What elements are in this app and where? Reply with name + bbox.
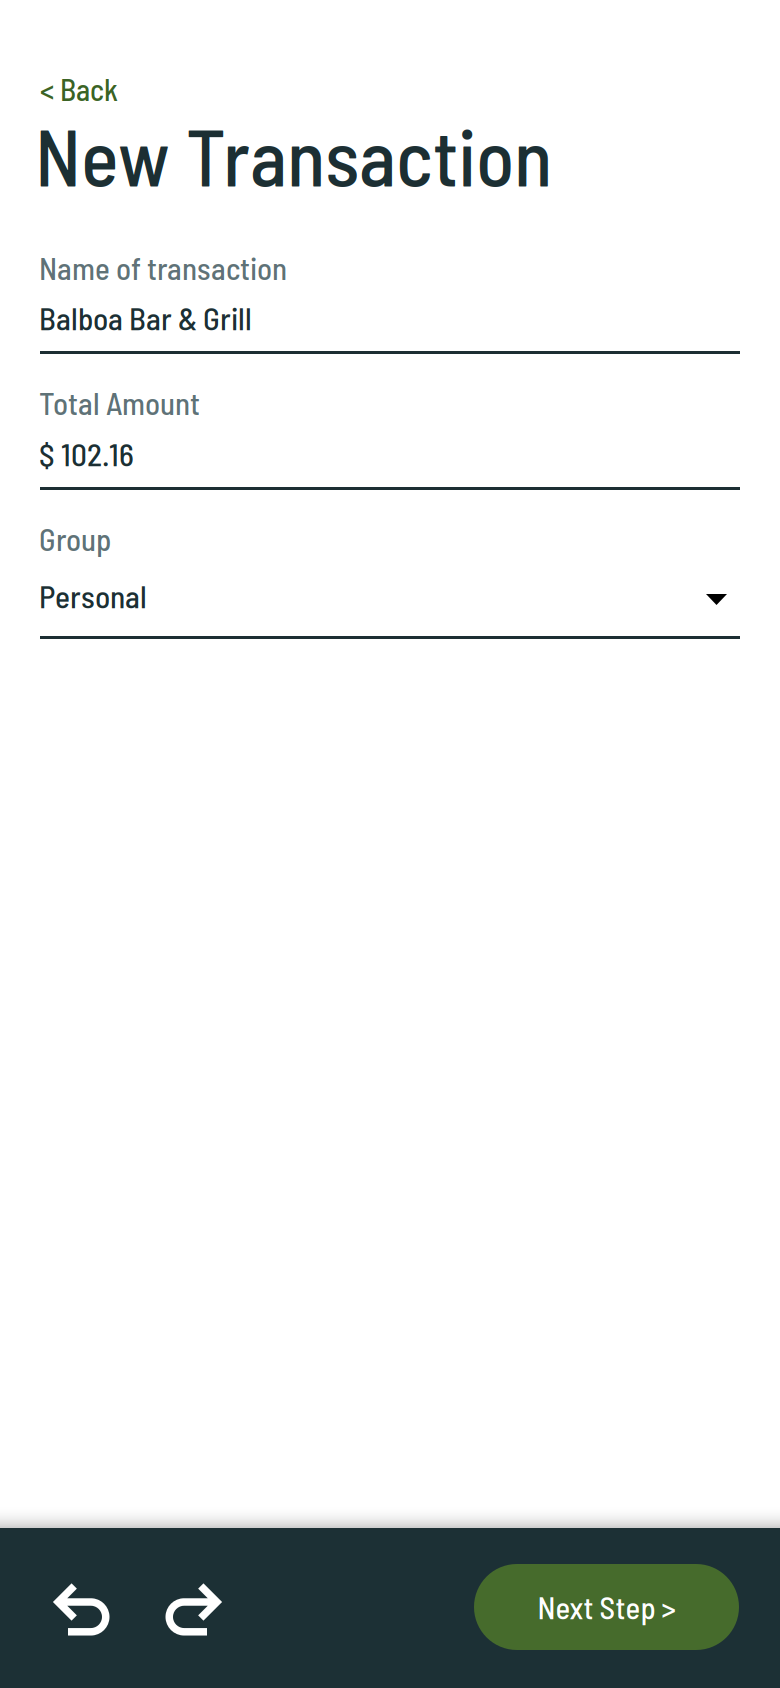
staticText: < Back [40,71,118,107]
staticText: Total Amount [39,384,200,421]
staticText: Group [39,520,111,557]
staticText: New Transaction [35,108,552,202]
button[interactable]: Redo [151,1572,235,1650]
staticText: Next Step > [537,1589,675,1625]
staticText: Personal [39,577,147,615]
button[interactable]: Undo [40,1572,124,1650]
staticText: Name of transaction [39,249,287,286]
staticText: $ 102.16 [39,435,134,473]
button[interactable]: Choose group [690,578,743,621]
button[interactable]: Back [30,61,128,117]
button[interactable]: Next Step > [474,1564,739,1650]
staticText: Balboa Bar & Grill [39,299,252,337]
